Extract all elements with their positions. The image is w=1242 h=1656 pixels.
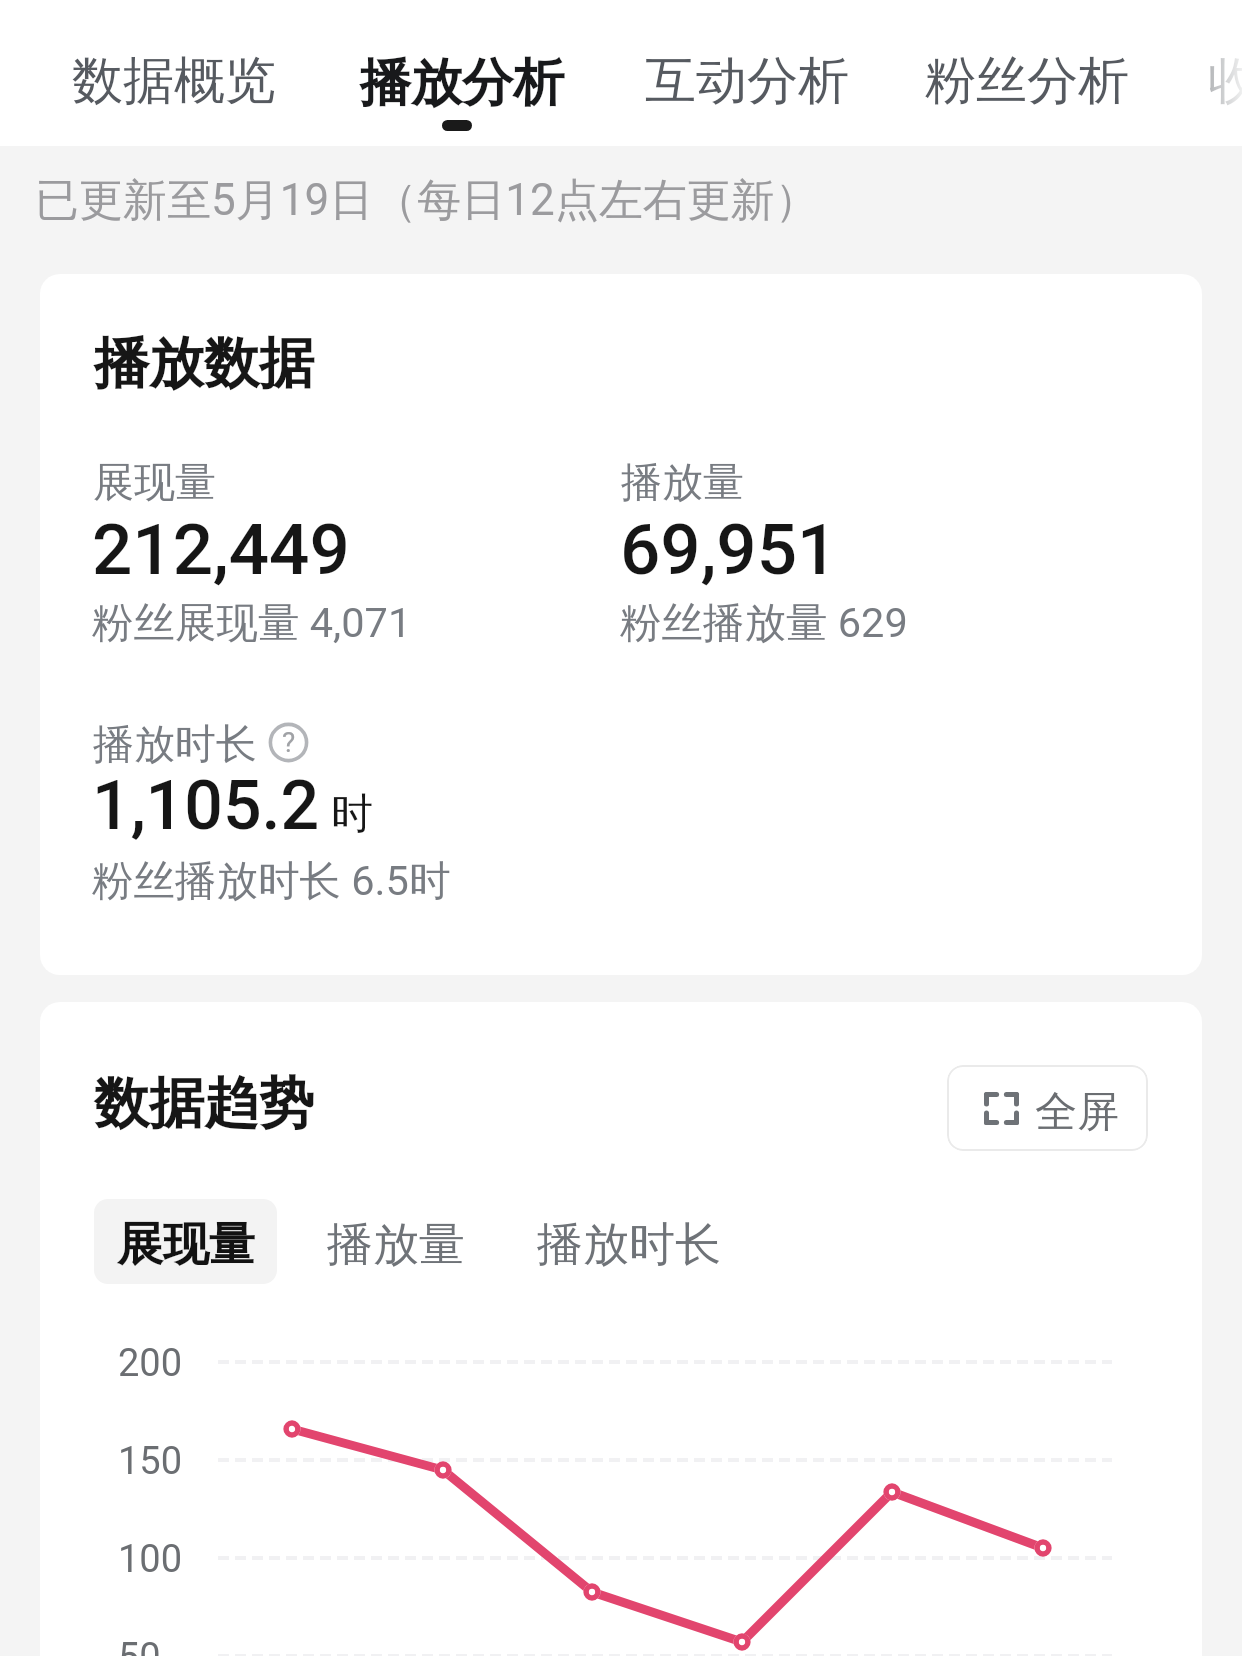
button[interactable]: 展现量 bbox=[94, 1199, 277, 1284]
staticText: 全屏 bbox=[1035, 1086, 1119, 1139]
staticText: 展现量 bbox=[93, 457, 216, 509]
staticText: 播放时长 bbox=[93, 719, 257, 771]
button[interactable]: 数据概览 bbox=[54, 0, 294, 146]
staticText: 时 bbox=[331, 788, 373, 841]
staticText: 粉丝播放时长 6.5时 bbox=[92, 855, 451, 907]
button[interactable]: 收 bbox=[1190, 0, 1242, 146]
staticText: 100 bbox=[118, 1537, 183, 1579]
staticText: 互动分析 bbox=[645, 49, 849, 113]
staticText: 数据概览 bbox=[72, 49, 276, 113]
staticText: ? bbox=[282, 726, 296, 759]
staticText: 展现量 bbox=[117, 1216, 255, 1274]
staticText: 150 bbox=[118, 1439, 183, 1481]
staticText: 播放分析 bbox=[360, 51, 564, 115]
button[interactable]: 播放时长说明 bbox=[268, 722, 309, 763]
staticText: 粉丝播放量 629 bbox=[620, 597, 908, 649]
staticText: 69,951 bbox=[620, 508, 838, 591]
button[interactable]: 播放时长 bbox=[520, 1199, 738, 1284]
button[interactable]: 全屏 bbox=[947, 1065, 1148, 1151]
staticText: 收 bbox=[1208, 49, 1242, 113]
staticText: 播放时长 bbox=[537, 1216, 721, 1274]
staticText: 50 bbox=[118, 1635, 161, 1656]
staticText: 播放数据 bbox=[94, 329, 314, 398]
staticText: 已更新至5月19日（每日12点左右更新） bbox=[35, 173, 819, 228]
staticText: 播放量 bbox=[327, 1216, 465, 1274]
staticText: 数据趋势 bbox=[94, 1069, 314, 1138]
staticText: 1,105.2 bbox=[92, 766, 320, 846]
button[interactable]: 粉丝分析 bbox=[907, 0, 1147, 146]
button[interactable]: 播放量 bbox=[309, 1199, 483, 1284]
staticText: 播放量 bbox=[621, 457, 744, 509]
staticText: 粉丝展现量 4,071 bbox=[92, 597, 412, 649]
staticText: 粉丝分析 bbox=[925, 49, 1129, 113]
staticText: 200 bbox=[118, 1341, 183, 1383]
staticText: 212,449 bbox=[92, 508, 350, 591]
button[interactable]: 互动分析 bbox=[627, 0, 867, 146]
button[interactable]: 播放分析 bbox=[342, 0, 582, 146]
